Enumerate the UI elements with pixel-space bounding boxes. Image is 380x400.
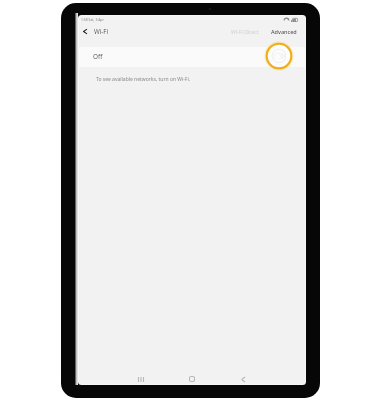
- button[interactable]: Recent apps: [125, 371, 156, 384]
- button[interactable]: Off: [79, 47, 305, 67]
- button[interactable]: Advanced: [268, 25, 303, 37]
- staticText: 1:58 Sat, 3 Apr: [81, 17, 104, 22]
- staticText: Advanced: [271, 28, 297, 34]
- button[interactable]: Home: [176, 371, 207, 384]
- staticText: Wi-Fi: [94, 27, 109, 35]
- staticText: To see available networks, turn on Wi-Fi…: [96, 76, 191, 83]
- staticText: Off: [93, 52, 103, 61]
- button[interactable]: Back: [227, 371, 258, 384]
- button[interactable]: Wi-Fi Direct: [228, 25, 262, 37]
- button[interactable]: Back: [79, 25, 91, 37]
- staticText: Wi-Fi Direct: [231, 28, 259, 34]
